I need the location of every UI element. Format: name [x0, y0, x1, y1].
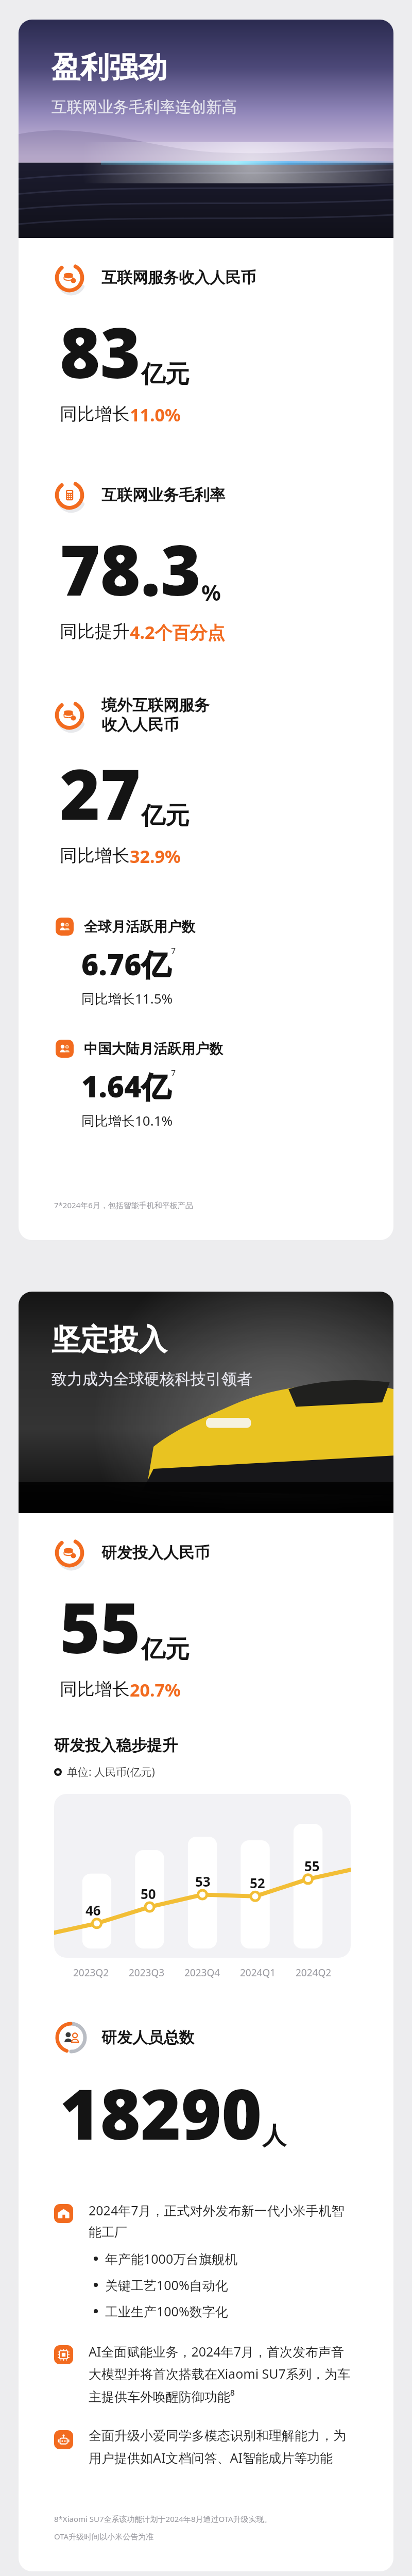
staticText: 2023Q4 [184, 1966, 220, 1979]
staticText: 中国大陆月活跃用户数 [84, 1040, 223, 1058]
staticText: 年产能1000万台旗舰机 [105, 2250, 238, 2267]
staticText: 研发人员总数 [101, 2028, 194, 2047]
staticText: 11.0% [130, 403, 181, 427]
staticText: 研发投入人民币 [101, 1543, 210, 1563]
staticText: 坚定投入 [51, 1321, 167, 1358]
staticText: 亿元 [141, 359, 190, 389]
staticText: 53 [195, 1872, 211, 1890]
staticText: 52 [250, 1874, 265, 1892]
staticText: 7 [171, 1067, 176, 1079]
staticText: 工业生产100%数字化 [105, 2302, 228, 2320]
staticText: 55 [304, 1857, 320, 1875]
staticText: 46 [85, 1901, 101, 1919]
staticText: 盈利强劲 [51, 49, 167, 86]
staticText: 27 [60, 746, 141, 840]
staticText: 境外互联网服务 [101, 696, 210, 715]
staticText: 致力成为全球硬核科技引领者 [51, 1369, 252, 1389]
staticText: AI全面赋能业务，2024年7月，首次发布声音大模型并将首次搭载在Xiaomi … [89, 2343, 351, 2405]
staticText: 2024年7月，正式对外发布新一代小米手机智能工厂 [89, 2201, 351, 2241]
staticText: 互联网业务毛利率连创新高 [51, 97, 237, 117]
staticText: 6.76亿 [81, 944, 171, 984]
staticText: 同比增长 [60, 1678, 130, 1700]
staticText: 2023Q3 [129, 1966, 165, 1979]
staticText: 亿元 [141, 1634, 190, 1665]
staticText: 2024Q1 [240, 1966, 276, 1979]
staticText: 同比增长11.5% [81, 989, 173, 1008]
staticText: 2023Q2 [73, 1966, 109, 1979]
staticText: 亿元 [141, 801, 190, 831]
staticText: % [201, 578, 221, 607]
staticText: 人 [262, 2121, 286, 2151]
staticText: 研发投入稳步提升 [54, 1736, 178, 1755]
staticText: 20.7% [130, 1678, 181, 1702]
staticText: 同比增长10.1% [81, 1111, 173, 1130]
staticText: 关键工艺100%自动化 [105, 2276, 228, 2294]
staticText: 7 [171, 945, 176, 957]
staticText: 全面升级小爱同学多模态识别和理解能力，为用户提供如AI文档问答、AI智能成片等功… [89, 2428, 351, 2466]
staticText: 18290 [60, 2066, 262, 2160]
staticText: 50 [141, 1885, 156, 1903]
staticText: 4.2个百分点 [130, 620, 225, 644]
staticText: 32.9% [130, 844, 181, 868]
staticText: 同比增长 [60, 403, 130, 425]
staticText: 2024Q2 [296, 1966, 332, 1979]
staticText: 全球月活跃用户数 [84, 918, 195, 936]
staticText: 互联网服务收入人民币 [101, 268, 256, 287]
staticText: 78.3 [60, 522, 201, 616]
staticText: 单位: 人民币(亿元) [67, 1765, 155, 1780]
staticText: 55 [60, 1580, 141, 1674]
staticText: OTA升级时间以小米公告为准 [54, 2531, 154, 2541]
staticText: 83 [60, 304, 141, 399]
staticText: 1.64亿 [81, 1066, 171, 1106]
staticText: 收入人民币 [101, 715, 179, 735]
staticText: 同比增长 [60, 844, 130, 867]
staticText: 同比提升 [60, 620, 130, 642]
staticText: 互联网业务毛利率 [101, 485, 225, 505]
staticText: 8*Xiaomi SU7全系该功能计划于2024年8月通过OTA升级实现。 [54, 2514, 272, 2524]
staticText: 7*2024年6月，包括智能手机和平板产品 [54, 1200, 193, 1210]
